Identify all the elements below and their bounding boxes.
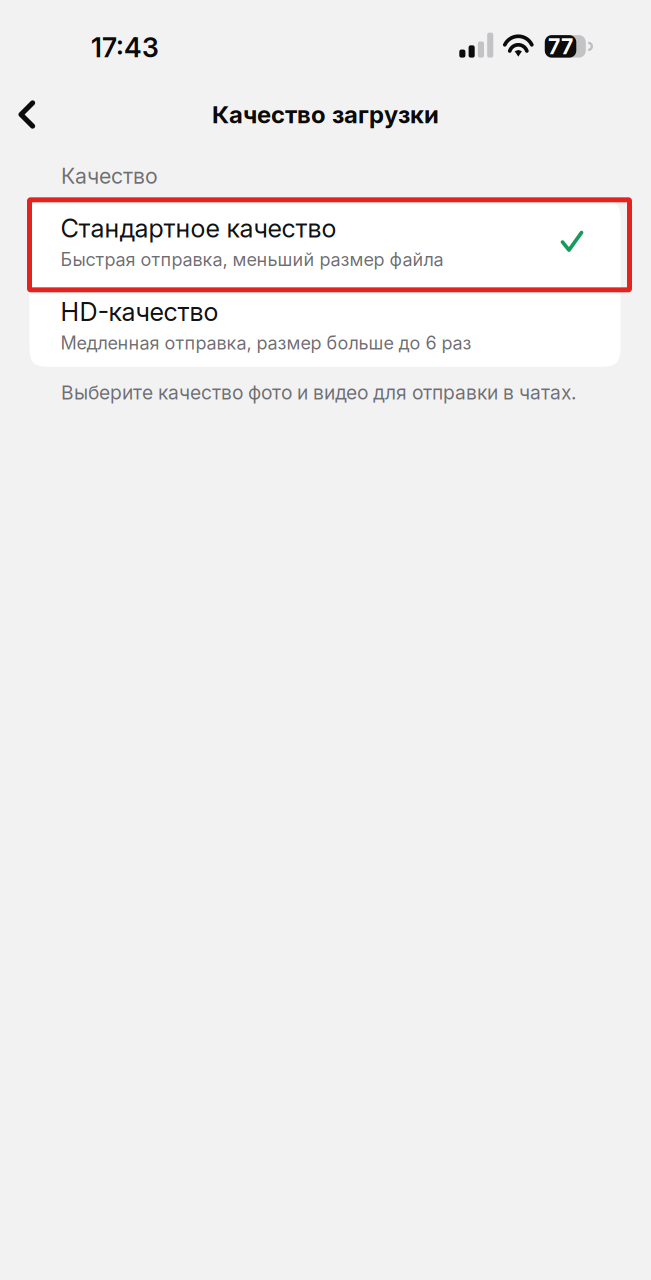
button[interactable]: Стандартное качество — [29, 200, 620, 283]
staticText: 77 — [548, 33, 573, 59]
button[interactable]: Back — [0, 86, 56, 143]
button[interactable]: HD-качество — [29, 283, 620, 367]
staticText: HD-качество — [60, 296, 218, 327]
staticText: Качество — [61, 163, 158, 189]
staticText: Медленная отправка, размер больше до 6 р… — [60, 332, 471, 354]
staticText: Быстрая отправка, меньший размер файла — [60, 248, 443, 270]
staticText: Стандартное качество — [60, 213, 336, 243]
staticText: 17:43 — [91, 31, 159, 64]
staticText: Выберите качество фото и видео для отпра… — [61, 381, 577, 404]
staticText: Качество загрузки — [212, 100, 439, 129]
